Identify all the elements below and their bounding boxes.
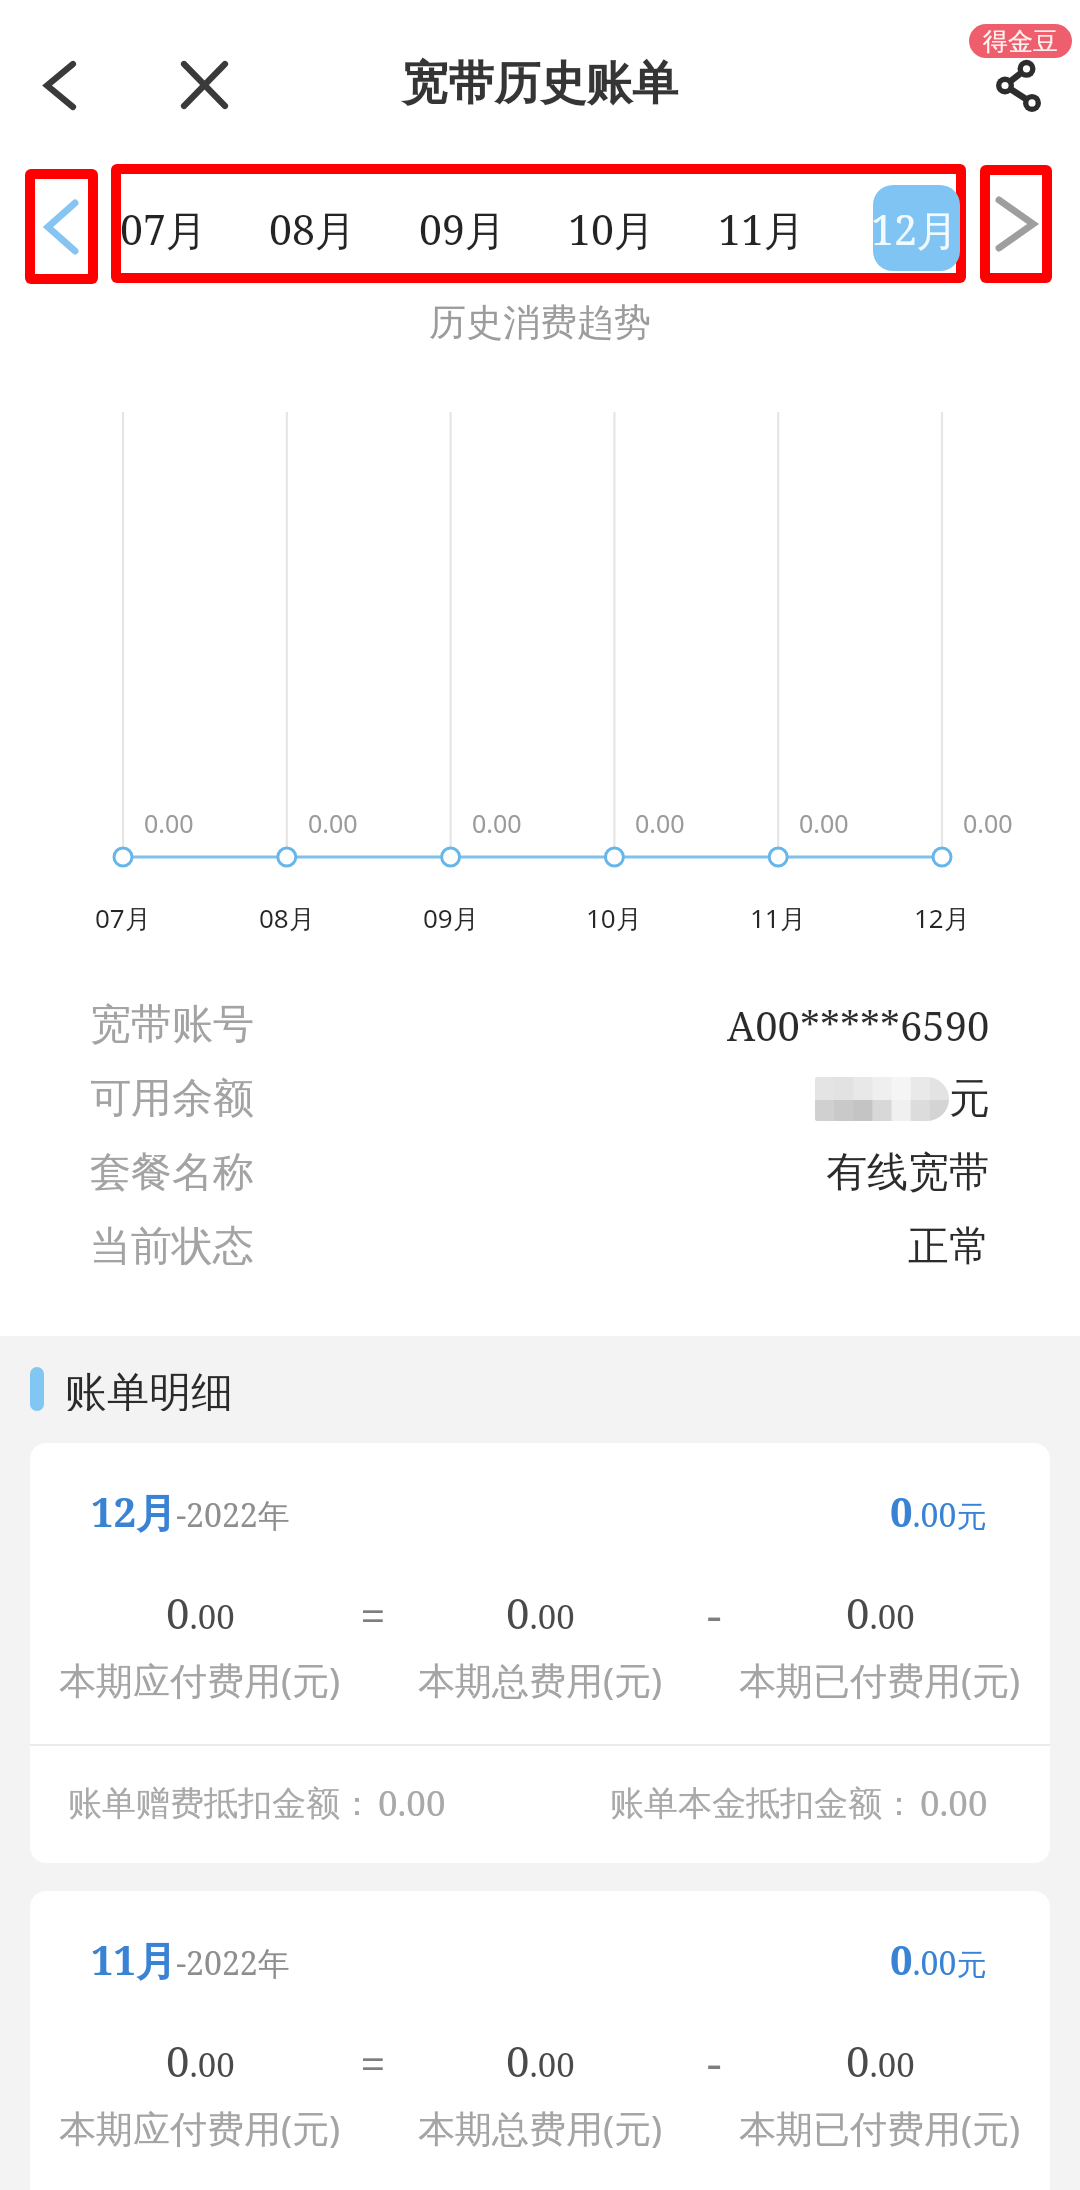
staticText: 本期已付费用(元)	[739, 2102, 1021, 2152]
staticText: 账单赠费抵扣金额：	[68, 1782, 374, 1825]
staticText: 0.00	[963, 806, 1013, 840]
button[interactable]: Share	[959, 45, 1079, 127]
staticText: 09月	[419, 201, 506, 257]
staticText: 元	[949, 1073, 990, 1125]
staticText: 正常	[908, 1221, 990, 1273]
staticText: 10月	[568, 201, 655, 257]
button[interactable]: 10月	[557, 174, 665, 273]
staticText: 11月-2022年	[91, 1932, 290, 1986]
staticText: 0.00	[846, 2032, 915, 2089]
staticText: 本期应付费用(元)	[59, 2102, 341, 2152]
staticText: 12月	[871, 201, 958, 257]
staticText: 0.00	[166, 1584, 235, 1641]
button[interactable]: 得金豆	[969, 24, 1072, 58]
staticText: 0.00	[635, 806, 685, 840]
staticText: 历史消费趋势	[429, 299, 651, 346]
staticText: 09月	[423, 900, 479, 936]
staticText: 本期总费用(元)	[418, 1654, 663, 1704]
staticText: 有线宽带	[826, 1147, 990, 1199]
staticText: 套餐名称	[90, 1147, 254, 1199]
staticText: 当前状态	[90, 1221, 254, 1273]
button[interactable]: Previous months	[35, 179, 88, 274]
staticText: 0.00	[920, 1779, 988, 1827]
staticText: 本期应付费用(元)	[59, 1654, 341, 1704]
staticText: 11月	[718, 201, 805, 257]
staticText: 0.00	[799, 806, 849, 840]
staticText: 宽带历史账单	[402, 55, 678, 113]
button[interactable]: Close	[164, 45, 244, 125]
staticText: 12月-2022年	[91, 1484, 290, 1538]
button[interactable]: 12月	[856, 174, 964, 273]
staticText: 0.00	[166, 2032, 235, 2089]
staticText: =	[360, 2031, 386, 2081]
staticText: 账单明细	[65, 1367, 233, 1411]
staticText: 得金豆	[983, 26, 1058, 57]
staticText: 本期总费用(元)	[418, 2102, 663, 2152]
button[interactable]: Back	[20, 45, 100, 125]
staticText: 08月	[259, 900, 315, 936]
button[interactable]: 09月	[408, 174, 516, 273]
button[interactable]: 12月-2022年	[30, 1443, 1050, 1863]
staticText: 0.00元	[890, 1932, 987, 1986]
staticText: 宽带账号	[90, 999, 254, 1051]
button[interactable]: Next months	[990, 175, 1042, 273]
staticText: 0.00	[846, 1584, 915, 1641]
button[interactable]: 11月-2022年	[30, 1891, 1050, 2190]
staticText: 账单本金抵扣金额：	[610, 1782, 916, 1825]
staticText: A00*****6590	[727, 998, 990, 1052]
staticText: 0.00	[378, 1779, 446, 1827]
staticText: 11月	[750, 900, 806, 936]
staticText: 本期已付费用(元)	[739, 1654, 1021, 1704]
staticText: 0.00	[506, 2032, 575, 2089]
staticText: 可用余额	[90, 1073, 254, 1125]
button[interactable]: 08月	[258, 174, 366, 273]
staticText: 0.00	[506, 1584, 575, 1641]
button[interactable]: 07月	[111, 174, 217, 273]
staticText: 12月	[914, 900, 970, 936]
staticText: 10月	[586, 900, 642, 936]
button[interactable]: 11月	[707, 174, 815, 273]
staticText: -	[707, 1583, 722, 1633]
staticText: 07月	[95, 900, 151, 936]
staticText: 07月	[120, 201, 207, 257]
staticText: 08月	[269, 201, 356, 257]
staticText: 0.00元	[890, 1484, 987, 1538]
staticText: 0.00	[144, 806, 194, 840]
staticText: -	[707, 2031, 722, 2081]
staticText: =	[360, 1583, 386, 1633]
staticText: 0.00	[472, 806, 522, 840]
staticText: 0.00	[308, 806, 358, 840]
